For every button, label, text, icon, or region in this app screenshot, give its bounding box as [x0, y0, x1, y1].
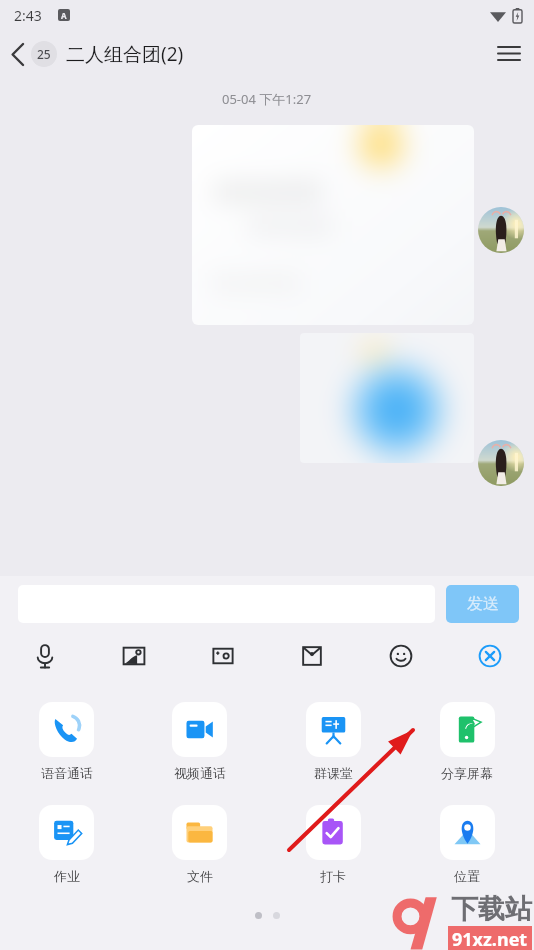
staticText: 05-04 下午1:27: [222, 90, 312, 108]
button[interactable]: Image message: [300, 333, 474, 463]
staticText: 2:43: [14, 6, 42, 25]
button[interactable]: 文件: [133, 801, 266, 888]
button[interactable]: Photo: [89, 632, 178, 680]
button[interactable]: Image message: [192, 125, 474, 325]
staticText: 发送: [467, 594, 499, 614]
staticText: 91xz.net: [452, 927, 528, 949]
staticText: 文件: [187, 868, 213, 884]
staticText: 群课堂: [314, 765, 353, 781]
button[interactable]: 视频通话: [133, 698, 266, 785]
staticText: 打卡: [320, 868, 346, 884]
staticText: 下载站: [451, 892, 532, 926]
button[interactable]: Back, 25 unread: [0, 37, 63, 71]
button[interactable]: 发送: [446, 585, 519, 623]
button[interactable]: Camera: [178, 632, 267, 680]
button[interactable]: Menu: [484, 32, 534, 75]
button[interactable]: Contact avatar: [478, 440, 524, 486]
staticText: 语音通话: [41, 765, 93, 781]
button[interactable]: Voice message: [0, 632, 89, 680]
button[interactable]: 群课堂: [266, 698, 400, 785]
button[interactable]: Red packet: [267, 632, 356, 680]
staticText: A: [61, 10, 67, 21]
button[interactable]: Contact avatar: [478, 207, 524, 253]
button[interactable]: 作业: [0, 801, 133, 888]
staticText: 25: [37, 46, 51, 62]
staticText: 二人组合团(2): [66, 41, 184, 67]
button[interactable]: Close panel: [445, 632, 534, 680]
button[interactable]: Emoji: [356, 632, 445, 680]
button[interactable]: 位置: [400, 801, 534, 888]
button[interactable]: 打卡: [266, 801, 400, 888]
button[interactable]: 分享屏幕: [400, 698, 534, 785]
staticText: 位置: [454, 868, 480, 884]
staticText: 视频通话: [174, 765, 226, 781]
staticText: 分享屏幕: [441, 765, 493, 781]
button[interactable]: 语音通话: [0, 698, 133, 785]
staticText: 作业: [54, 868, 80, 884]
